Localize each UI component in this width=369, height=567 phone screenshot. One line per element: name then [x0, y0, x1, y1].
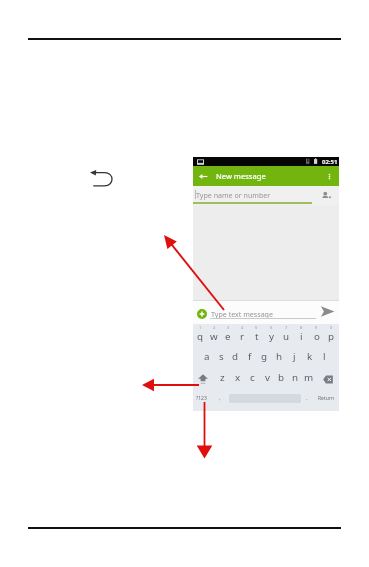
button[interactable]: 6 — [264, 324, 279, 346]
staticText: s — [219, 350, 224, 363]
staticText: b — [278, 371, 285, 384]
button[interactable]: 7 — [279, 324, 294, 346]
button[interactable]: 1 — [193, 324, 207, 346]
button[interactable]: Backspace — [316, 367, 339, 388]
staticText: x — [235, 371, 241, 384]
button[interactable]: k — [302, 346, 317, 367]
staticText: o — [314, 330, 320, 343]
staticText: e — [225, 330, 231, 343]
staticText: k — [307, 350, 313, 363]
staticText: a — [204, 350, 210, 363]
button[interactable]: f — [242, 346, 257, 367]
staticText: p — [328, 330, 335, 343]
staticText: , — [219, 394, 221, 402]
button[interactable]: m — [302, 367, 316, 388]
staticText: 4 — [241, 325, 244, 330]
button[interactable]: 2 — [207, 324, 221, 346]
button[interactable]: More options — [324, 171, 335, 182]
button[interactable]: s — [214, 346, 228, 367]
button[interactable]: g — [257, 346, 272, 367]
staticText: f — [248, 350, 252, 363]
staticText: u — [283, 330, 290, 343]
staticText: z — [220, 371, 225, 384]
button[interactable]: 5 — [249, 324, 264, 346]
staticText: 9 — [315, 325, 318, 330]
staticText: g — [261, 350, 268, 363]
button[interactable]: a — [200, 346, 214, 367]
button[interactable]: Send — [320, 305, 335, 318]
staticText: y — [269, 330, 274, 343]
staticText: 02:51 — [322, 158, 338, 166]
staticText: t — [255, 330, 259, 343]
staticText: 2 — [213, 325, 216, 330]
button[interactable]: j — [287, 346, 302, 367]
staticText: 0 — [330, 325, 333, 330]
staticText: h — [276, 350, 283, 363]
button[interactable]: d — [228, 346, 242, 367]
staticText: m — [304, 371, 314, 384]
staticText: q — [197, 330, 204, 343]
button[interactable]: x — [230, 367, 245, 388]
staticText: i — [300, 330, 303, 343]
button[interactable]: Back — [198, 171, 209, 182]
button[interactable]: l — [317, 346, 332, 367]
button[interactable]: ?123 — [193, 388, 210, 408]
button[interactable]: Add contact — [320, 190, 332, 201]
staticText: w — [210, 330, 218, 343]
button[interactable]: h — [272, 346, 287, 367]
button[interactable]: Add attachment — [197, 309, 207, 319]
button[interactable]: v — [260, 367, 274, 388]
staticText: 7 — [285, 325, 288, 330]
staticText: Type name or number — [196, 190, 271, 200]
button[interactable]: 0 — [324, 324, 339, 346]
button[interactable]: c — [245, 367, 260, 388]
staticText: New message — [216, 171, 266, 181]
button[interactable]: 8 — [294, 324, 309, 346]
button[interactable]: 9 — [309, 324, 324, 346]
button[interactable]: b — [274, 367, 288, 388]
button[interactable]: 3 — [221, 324, 235, 346]
staticText: Return — [318, 395, 334, 402]
staticText: v — [265, 371, 270, 384]
button[interactable]: 4 — [235, 324, 249, 346]
staticText: . — [306, 394, 308, 402]
staticText: 1 — [199, 325, 202, 330]
staticText: ?123 — [196, 395, 207, 402]
button[interactable]: z — [215, 367, 230, 388]
staticText: r — [240, 330, 245, 343]
staticText: c — [250, 371, 255, 384]
staticText: 3 — [227, 325, 230, 330]
staticText: 5 — [255, 325, 258, 330]
staticText: Type text message — [211, 309, 273, 319]
staticText: n — [292, 371, 299, 384]
staticText: l — [323, 350, 326, 363]
staticText: d — [232, 350, 239, 363]
button[interactable]: Shift — [193, 367, 215, 388]
button[interactable]: Return — [313, 388, 339, 408]
staticText: 8 — [300, 325, 303, 330]
staticText: 6 — [270, 325, 273, 330]
staticText: j — [293, 350, 296, 363]
button[interactable]: n — [288, 367, 302, 388]
